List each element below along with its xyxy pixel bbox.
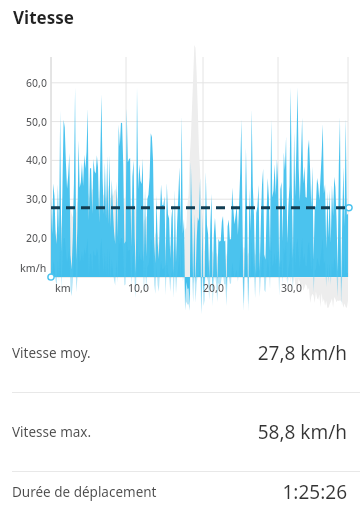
staticText: 1:25:26 <box>282 479 347 505</box>
button[interactable]: Vitesse moy. <box>0 314 360 392</box>
staticText: 27,8 km/h <box>257 340 347 366</box>
button[interactable]: Vitesse max. <box>0 393 360 471</box>
staticText: Vitesse max. <box>12 423 92 441</box>
staticText: Vitesse moy. <box>12 344 91 362</box>
staticText: Durée de déplacement <box>12 483 157 501</box>
button[interactable]: Graphique de vitesse <box>0 34 360 300</box>
button[interactable]: Durée de déplacement <box>0 472 360 512</box>
staticText: Vitesse <box>13 6 74 29</box>
staticText: 58,8 km/h <box>257 419 347 445</box>
